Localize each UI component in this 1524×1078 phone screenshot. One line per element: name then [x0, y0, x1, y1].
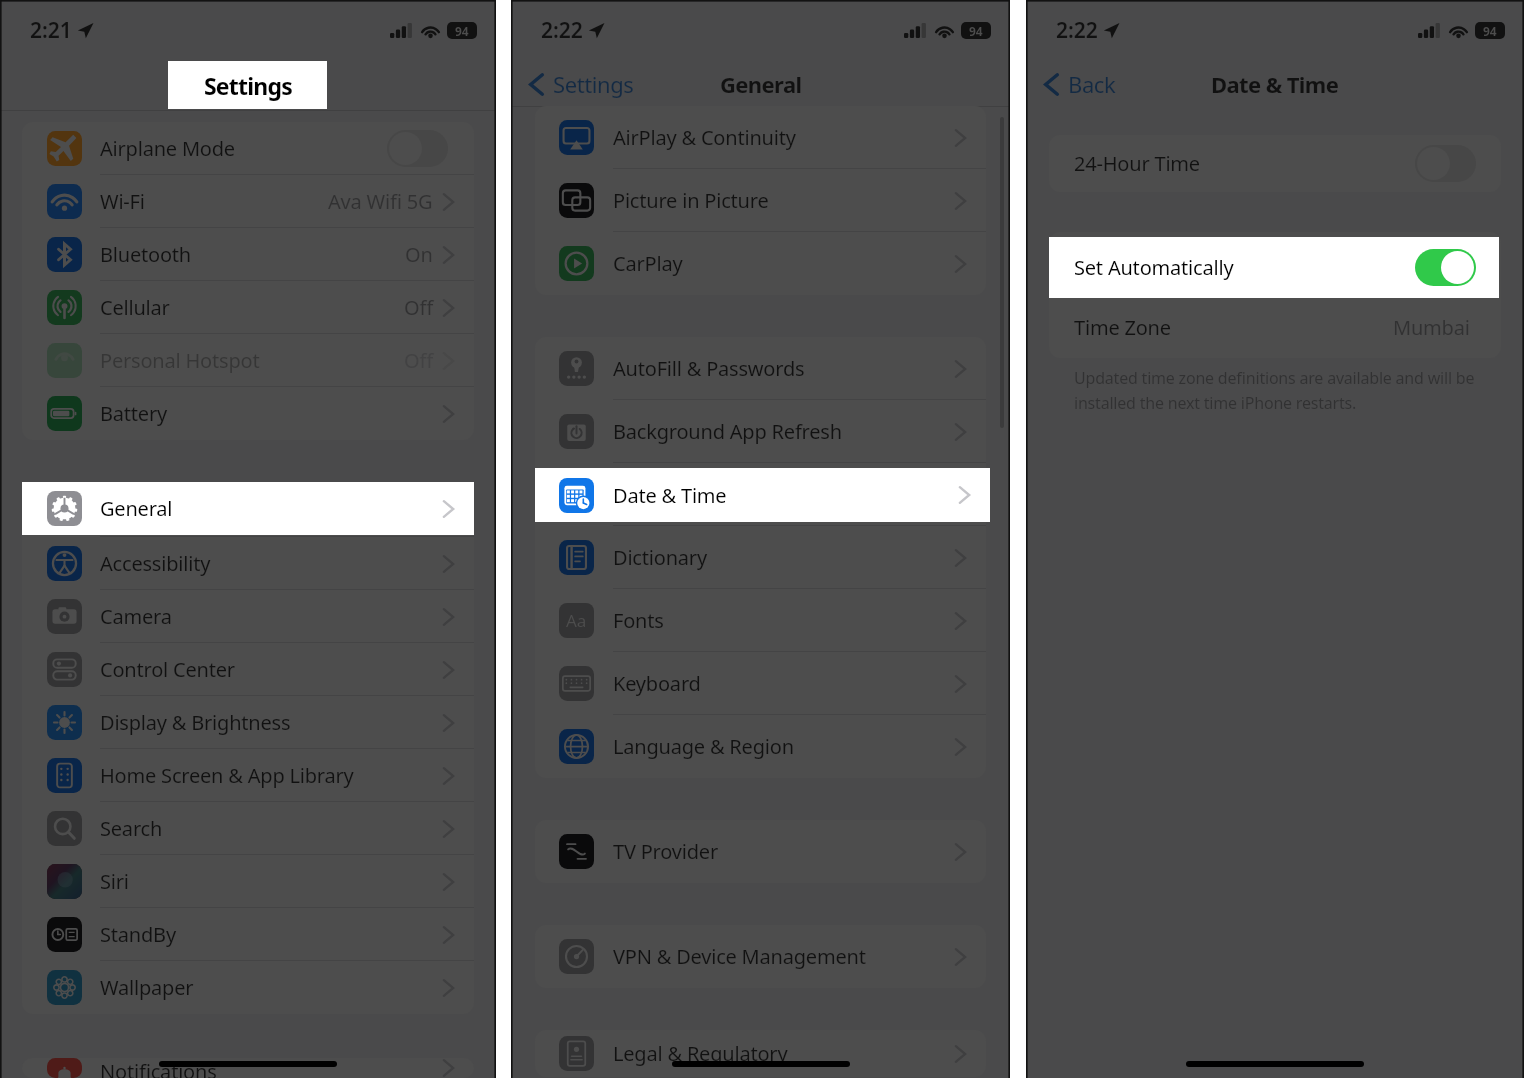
button[interactable]: TV Provider — [535, 820, 986, 883]
staticText: TV Provider — [613, 838, 718, 865]
staticText: Date & Time — [1211, 69, 1339, 99]
staticText: Accessibility — [100, 550, 211, 577]
button[interactable]: Notifications — [22, 1058, 474, 1078]
staticText: Siri — [100, 868, 129, 895]
staticText: Aa — [566, 609, 587, 632]
button[interactable]: Wi-Fi — [22, 175, 474, 228]
staticText: StandBy — [100, 921, 176, 948]
staticText: 94 — [1483, 23, 1497, 39]
staticText: 2:22 — [1056, 16, 1098, 45]
button[interactable]: General — [22, 484, 474, 537]
button[interactable]: Back to Settings — [529, 69, 634, 99]
staticText: Fonts — [613, 607, 664, 634]
staticText: Settings — [553, 69, 634, 99]
button[interactable]: General — [22, 482, 474, 535]
staticText: Settings — [204, 70, 292, 101]
button[interactable]: Aa — [535, 589, 986, 652]
button[interactable]: VPN & Device Management — [535, 925, 986, 988]
staticText: Display & Brightness — [100, 709, 291, 736]
staticText: Airplane Mode — [100, 135, 235, 162]
button[interactable]: Settings — [168, 61, 327, 109]
button[interactable]: Battery — [22, 387, 474, 440]
staticText: General — [720, 69, 802, 99]
button[interactable]: Search — [22, 802, 474, 855]
staticText: Cellular — [100, 294, 170, 321]
staticText: Bluetooth — [100, 241, 191, 268]
staticText: Wallpaper — [100, 974, 194, 1001]
button[interactable]: Display & Brightness — [22, 696, 474, 749]
button[interactable]: Back — [1044, 69, 1116, 99]
staticText: 94 — [455, 23, 469, 39]
button[interactable]: Bluetooth — [22, 228, 474, 281]
staticText: Picture in Picture — [613, 187, 769, 214]
staticText: Notifications — [100, 1058, 217, 1078]
button[interactable]: Wallpaper — [22, 961, 474, 1014]
staticText: 24-Hour Time — [1074, 150, 1200, 177]
staticText: AirPlay & Continuity — [613, 124, 796, 151]
button[interactable]: Airplane Mode — [22, 122, 474, 175]
staticText: Off — [404, 347, 433, 374]
button[interactable]: Set Automatically — [1049, 232, 1501, 297]
staticText: Language & Region — [613, 733, 794, 760]
button[interactable]: AirPlay & Continuity — [535, 106, 986, 169]
button[interactable]: Accessibility — [22, 537, 474, 590]
staticText: Background App Refresh — [613, 418, 842, 445]
staticText: Personal Hotspot — [100, 347, 260, 374]
staticText: Search — [100, 815, 163, 842]
staticText: Updated time zone definitions are availa… — [1074, 367, 1493, 413]
staticText: Control Center — [100, 656, 235, 683]
staticText: On — [405, 241, 433, 268]
button[interactable]: Siri — [22, 855, 474, 908]
button[interactable]: Set Automatically — [1417, 246, 1478, 283]
staticText: Keyboard — [613, 670, 701, 697]
button[interactable]: StandBy — [22, 908, 474, 961]
button[interactable]: Background App Refresh — [535, 400, 986, 463]
button[interactable]: Keyboard — [535, 652, 986, 715]
staticText: General — [100, 495, 173, 522]
button[interactable]: Home Screen & App Library — [22, 749, 474, 802]
staticText: Dictionary — [613, 544, 707, 571]
staticText: VPN & Device Management — [613, 943, 866, 970]
staticText: 94 — [969, 23, 983, 39]
other: Home indicator — [672, 1061, 850, 1067]
staticText: Back — [1068, 69, 1116, 99]
other: Home indicator — [159, 1061, 337, 1067]
button[interactable]: AutoFill & Passwords — [535, 337, 986, 400]
staticText: Date & Time — [613, 482, 727, 509]
staticText: Mumbai — [1393, 314, 1470, 341]
button[interactable]: CarPlay — [535, 232, 986, 295]
staticText: Camera — [100, 603, 172, 630]
button[interactable]: Set Automatically — [1415, 249, 1476, 286]
button[interactable]: Cellular — [22, 281, 474, 334]
staticText: Home Screen & App Library — [100, 762, 354, 789]
button[interactable]: Language & Region — [535, 715, 986, 778]
staticText: CarPlay — [613, 250, 683, 277]
staticText: AutoFill & Passwords — [613, 355, 805, 382]
staticText: Legal & Regulatory — [613, 1040, 788, 1067]
button[interactable]: Time Zone — [1049, 297, 1501, 358]
button[interactable]: Dictionary — [535, 526, 986, 589]
button[interactable]: Personal Hotspot — [22, 334, 474, 387]
staticText: Ava Wifi 5G — [328, 188, 433, 215]
button[interactable]: 24-Hour Time — [1049, 135, 1501, 192]
button[interactable]: Camera — [22, 590, 474, 643]
button[interactable]: Legal & Regulatory — [535, 1030, 986, 1077]
staticText: Set Automatically — [1074, 254, 1234, 281]
button[interactable]: Set Automatically — [1049, 237, 1499, 298]
other: Home indicator — [1186, 1061, 1364, 1067]
staticText: 2:21 — [30, 16, 72, 45]
staticText: Wi-Fi — [100, 188, 145, 215]
staticText: Set Automatically — [1074, 251, 1234, 278]
staticText: Off — [404, 294, 433, 321]
staticText: Time Zone — [1074, 314, 1171, 341]
staticText: Date & Time — [613, 481, 727, 508]
staticText: Settings — [204, 70, 292, 101]
staticText: Battery — [100, 400, 167, 427]
button[interactable]: Picture in Picture — [535, 169, 986, 232]
staticText: General — [100, 497, 173, 524]
button[interactable]: Date & Time — [535, 468, 990, 522]
button[interactable]: Date & Time — [535, 463, 986, 526]
button[interactable]: Control Center — [22, 643, 474, 696]
